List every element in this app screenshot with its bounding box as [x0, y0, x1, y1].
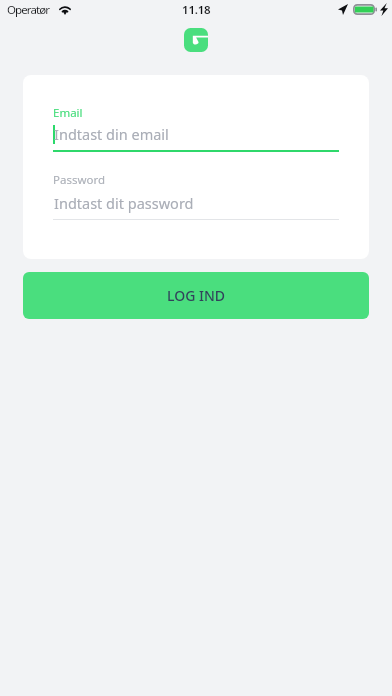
- staticText: Indtast din email: [54, 124, 169, 144]
- staticText: Operatør: [7, 2, 50, 18]
- staticText: Email: [53, 105, 83, 121]
- button[interactable]: Password: [53, 170, 339, 220]
- staticText: 11.18: [182, 2, 211, 18]
- other: App logo: [184, 28, 208, 52]
- other: Battery: [353, 4, 378, 15]
- button[interactable]: Email: [53, 103, 339, 152]
- staticText: Indtast dit password: [54, 193, 194, 213]
- staticText: LOG IND: [167, 286, 226, 305]
- other: Location active: [338, 4, 348, 15]
- button[interactable]: LOG IND: [23, 272, 369, 319]
- other: Charging: [380, 3, 388, 16]
- staticText: Password: [53, 172, 106, 188]
- other: Wi-Fi signal: [58, 4, 72, 14]
